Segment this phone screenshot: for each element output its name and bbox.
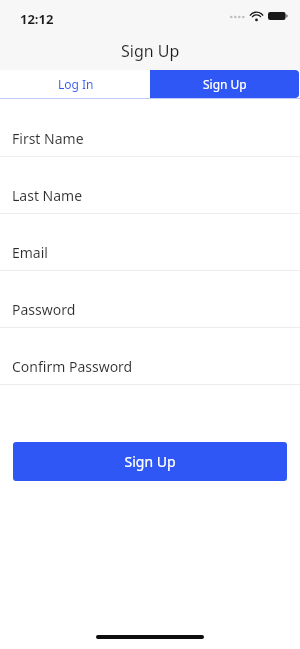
staticText: 12:12 <box>20 10 54 28</box>
staticText: Log In <box>58 76 94 92</box>
staticText: Password <box>12 300 76 319</box>
staticText: Sign Up <box>203 76 247 92</box>
button[interactable]: First Name <box>0 120 300 177</box>
staticText: Last Name <box>12 186 83 205</box>
staticText: Email <box>12 243 48 262</box>
button[interactable]: Log In <box>1 70 150 98</box>
button[interactable]: Sign Up <box>13 442 287 481</box>
staticText: First Name <box>12 129 84 148</box>
button[interactable]: Last Name <box>0 177 300 234</box>
button[interactable]: Sign Up <box>150 70 299 98</box>
staticText: Sign Up <box>124 452 176 471</box>
button[interactable]: Confirm Password <box>0 348 300 405</box>
button[interactable]: Email <box>0 234 300 291</box>
staticText: Sign Up <box>121 40 180 62</box>
button[interactable]: Password <box>0 291 300 348</box>
staticText: Confirm Password <box>12 357 133 376</box>
